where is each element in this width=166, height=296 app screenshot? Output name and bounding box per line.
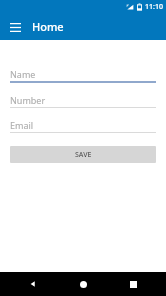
- staticText: SAVE: [75, 150, 92, 160]
- button[interactable]: Back: [16, 272, 50, 296]
- staticText: Home: [32, 19, 64, 34]
- button[interactable]: Email: [10, 117, 156, 133]
- staticText: Number: [10, 94, 46, 106]
- staticText: 11:10: [145, 2, 163, 12]
- button[interactable]: Recent apps: [116, 272, 150, 296]
- button[interactable]: Open navigation menu: [5, 17, 25, 37]
- staticText: Name: [10, 68, 36, 80]
- button[interactable]: Number: [10, 92, 156, 108]
- button[interactable]: SAVE: [10, 146, 156, 163]
- staticText: Email: [10, 119, 34, 131]
- button[interactable]: Name: [10, 66, 156, 83]
- button[interactable]: Home: [66, 272, 100, 296]
